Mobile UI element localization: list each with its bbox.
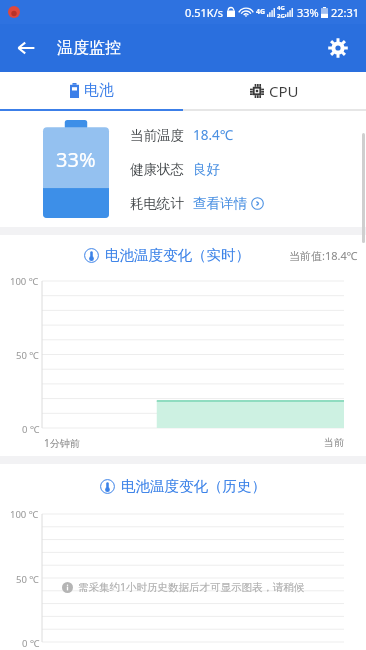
staticText: 18.4℃ bbox=[193, 126, 234, 144]
staticText: 50 ℃ bbox=[16, 349, 39, 362]
staticText: 0 ℃ bbox=[22, 423, 40, 436]
staticText: 0 ℃ bbox=[22, 637, 40, 650]
staticText: 当前值:18.4℃ bbox=[289, 248, 358, 263]
staticText: 50 ℃ bbox=[16, 573, 39, 586]
staticText: 查看详情 bbox=[193, 195, 247, 212]
staticText: 1分钟前 bbox=[44, 436, 80, 450]
staticText: 电池 bbox=[84, 81, 114, 100]
staticText: 良好 bbox=[193, 161, 220, 178]
staticText: 22:31 bbox=[331, 5, 360, 20]
staticText: 当前温度 bbox=[130, 127, 184, 144]
staticText: 100 ℃ bbox=[10, 508, 39, 521]
button[interactable]: CPU bbox=[183, 72, 366, 109]
staticText: 健康状态 bbox=[130, 161, 184, 178]
button[interactable]: 电池 bbox=[0, 72, 183, 109]
staticText: 33% bbox=[297, 5, 319, 20]
staticText: 电池温度变化（实时） bbox=[105, 246, 250, 264]
staticText: 0.51K/s bbox=[185, 5, 223, 20]
staticText: 需采集约1小时历史数据后才可显示图表，请稍候 bbox=[78, 580, 305, 594]
staticText: 100 ℃ bbox=[10, 275, 39, 288]
staticText: 4G bbox=[277, 4, 285, 12]
button[interactable]: Back bbox=[6, 28, 46, 68]
staticText: 耗电统计 bbox=[130, 195, 184, 212]
staticText: 4G bbox=[256, 7, 266, 17]
staticText: 当前 bbox=[324, 436, 344, 449]
button[interactable]: Settings bbox=[318, 28, 358, 68]
staticText: 33% bbox=[56, 146, 96, 173]
staticText: 电池温度变化（历史） bbox=[121, 477, 266, 495]
button[interactable]: 查看详情 bbox=[193, 195, 264, 212]
staticText: 温度监控 bbox=[57, 38, 121, 58]
staticText: 2G bbox=[277, 12, 285, 20]
staticText: CPU bbox=[269, 81, 299, 101]
